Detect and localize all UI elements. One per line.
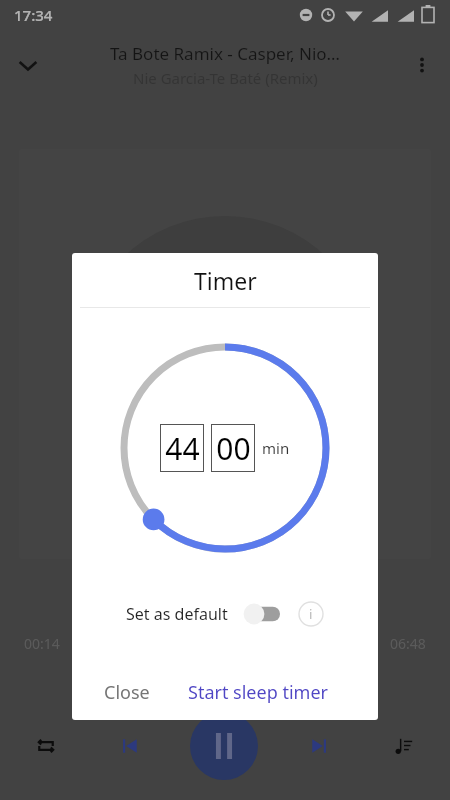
button[interactable]: More options [394,37,450,93]
button[interactable]: Set as default [72,588,378,640]
button[interactable]: Pause [190,712,258,780]
staticText: 17:34 [14,5,53,25]
button[interactable]: Close [96,674,158,711]
button[interactable]: Start sleep timer [180,674,336,711]
staticText: min [262,438,290,458]
staticText: Start sleep timer [188,680,328,705]
button[interactable]: Previous [106,722,154,770]
staticText: 00:14 [24,634,60,653]
staticText: Nie Garcia-Te Baté (Remix) [133,68,318,88]
staticText: Timer [194,265,257,296]
button[interactable]: 00 [211,424,255,472]
button[interactable]: Playlist [380,722,428,770]
staticText: 44 [165,428,200,469]
staticText: i [309,605,313,623]
button[interactable]: Set as default toggle [244,601,284,627]
staticText: 00 [216,428,251,469]
staticText: Set as default [126,603,228,625]
button[interactable]: Info [298,601,324,627]
staticText: 06:48 [390,634,426,653]
button[interactable]: Collapse [0,37,56,93]
staticText: Ta Bote Ramix - Casper, Nio… [110,42,341,65]
button[interactable]: Repeat [22,722,70,770]
button[interactable]: 44 [160,424,204,472]
staticText: Close [104,680,150,705]
button[interactable]: Next [295,722,343,770]
